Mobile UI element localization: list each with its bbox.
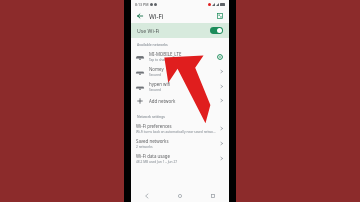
staticText: Wi-Fi turns back on automatically near s… [136,130,216,134]
staticText: Use Wi-Fi [137,27,160,34]
button[interactable]: Saved networks [131,136,229,151]
button[interactable]: Add network [131,94,229,107]
staticText: Wi-Fi preferences [136,123,172,129]
staticText: 2 networks [136,145,153,149]
staticText: Add network [149,98,219,104]
button[interactable]: Nomey [131,64,229,79]
staticText: hypen wifi [149,81,171,87]
button[interactable]: Network details [215,52,224,61]
staticText: MI-MOBILE_LTE [149,51,182,57]
button[interactable]: Wi-Fi preferences [131,121,229,136]
button[interactable]: Back [131,189,163,202]
staticText: Secured [149,88,162,92]
staticText: Wi-Fi [149,12,164,20]
staticText: Saved networks [136,138,169,144]
staticText: Available networks [137,42,168,47]
button[interactable]: hypen wifi [131,79,229,94]
button[interactable]: Scan QR code [215,11,225,21]
button[interactable]: Home [163,189,196,202]
button[interactable]: Use Wi-Fi [131,23,229,38]
button[interactable]: Wi-Fi data usage [131,151,229,166]
staticText: Secured [149,73,162,77]
staticText: Wi-Fi data usage [136,153,170,159]
staticText: 8:13 PM [135,2,149,7]
staticText: Nomey [149,66,164,72]
button[interactable]: MI-MOBILE_LTE [131,49,229,64]
button[interactable]: Back [135,11,145,21]
staticText: 48.2 MB used Jun 1 – Jun 27 [136,160,178,164]
staticText: Network settings [137,114,165,119]
staticText: Tap to share password [149,58,183,62]
button[interactable]: Recents [196,189,229,202]
